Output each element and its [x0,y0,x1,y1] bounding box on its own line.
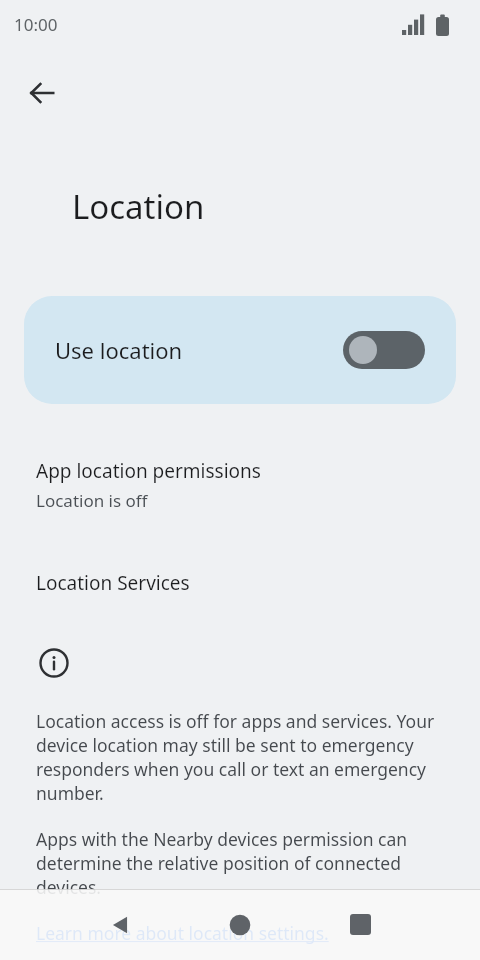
staticText: Apps with the Nearby devices permission … [36,827,460,899]
staticText: Location is off [36,489,148,512]
staticText: Location [72,184,205,229]
other: Information [38,647,70,679]
staticText: Learn more about location settings. [36,921,329,945]
button[interactable]: Use location [24,296,456,404]
button[interactable]: Back [18,69,66,117]
staticText: 10:00 [14,13,58,36]
button[interactable]: Location Services [0,558,480,608]
button[interactable]: Home [216,889,264,960]
button[interactable]: Learn more about location settings. [36,921,329,945]
staticText: Use location [55,335,183,365]
button[interactable]: Back [96,889,144,960]
staticText: Location Services [36,570,190,596]
button[interactable]: Recent apps [336,889,384,960]
staticText: App location permissions [36,458,261,484]
button[interactable]: App location permissions [0,444,480,526]
staticText: Location access is off for apps and serv… [36,709,460,805]
